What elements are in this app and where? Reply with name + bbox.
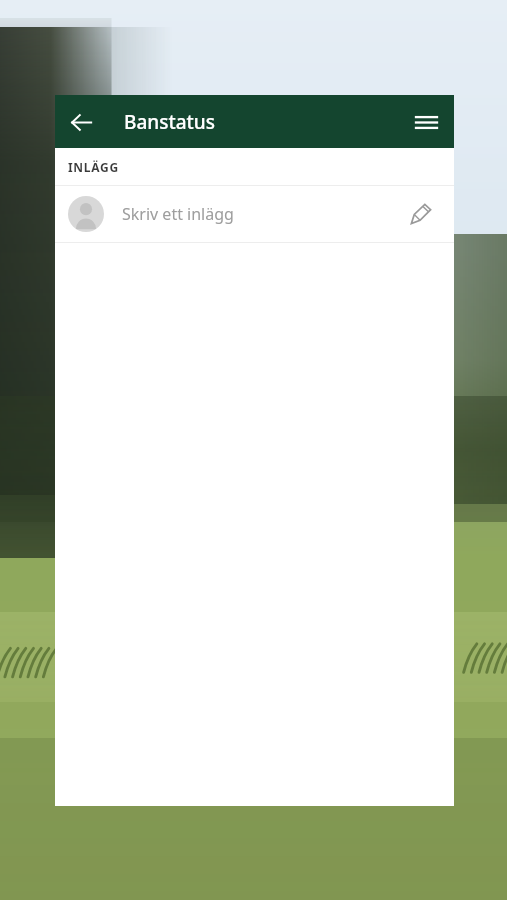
staticText: Skriv ett inlägg — [122, 203, 234, 225]
button[interactable]: Skriv ett inlägg — [55, 186, 454, 242]
button[interactable]: Menu — [404, 100, 448, 144]
button[interactable]: Write a post — [401, 194, 441, 234]
staticText: INLÄGG — [68, 159, 119, 175]
staticText: Banstatus — [124, 109, 216, 135]
button[interactable]: Back — [59, 100, 103, 144]
